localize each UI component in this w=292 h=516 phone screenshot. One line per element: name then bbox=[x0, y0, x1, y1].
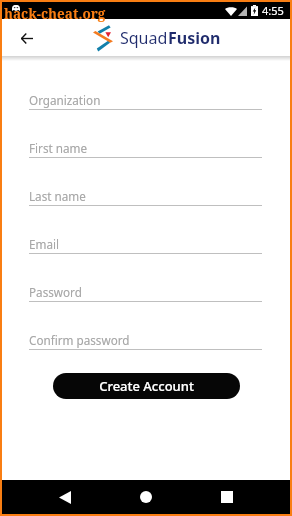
staticText: Fusion bbox=[168, 27, 221, 49]
staticText: Squad bbox=[120, 27, 168, 49]
button[interactable]: Last name bbox=[29, 185, 262, 233]
button[interactable]: Home bbox=[129, 480, 163, 514]
staticText: Confirm password bbox=[29, 332, 130, 348]
staticText: Password bbox=[29, 284, 82, 300]
staticText: Last name bbox=[29, 188, 86, 204]
button[interactable]: Organization bbox=[29, 89, 262, 137]
staticText: First name bbox=[29, 140, 88, 156]
button[interactable]: Password bbox=[29, 281, 262, 329]
button[interactable]: Recents bbox=[210, 480, 244, 514]
staticText: Email bbox=[29, 236, 60, 252]
button[interactable]: Email bbox=[29, 233, 262, 281]
button[interactable]: Confirm password bbox=[29, 329, 262, 377]
button[interactable]: Back bbox=[14, 25, 40, 51]
button[interactable]: Create Account bbox=[53, 373, 240, 399]
button[interactable]: Back bbox=[48, 480, 82, 514]
button[interactable]: First name bbox=[29, 137, 262, 185]
staticText: Create Account bbox=[99, 377, 194, 395]
staticText: Organization bbox=[29, 92, 101, 108]
staticText: 4:55 bbox=[262, 3, 284, 18]
staticText: hack-cheat.org bbox=[4, 5, 106, 22]
